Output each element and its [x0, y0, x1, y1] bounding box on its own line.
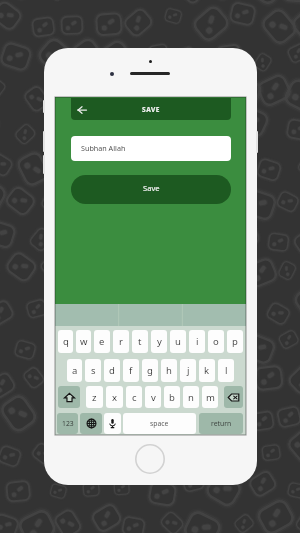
staticText: s — [91, 364, 96, 377]
staticText: l — [225, 364, 228, 377]
button[interactable]: v — [145, 386, 161, 408]
button[interactable]: a — [67, 359, 82, 382]
button[interactable]: q — [58, 330, 73, 353]
staticText: b — [169, 391, 175, 404]
staticText: 123 — [62, 419, 74, 428]
staticText: p — [232, 335, 238, 348]
staticText: k — [204, 364, 210, 377]
button[interactable]: y — [151, 330, 167, 353]
staticText: c — [132, 391, 137, 404]
staticText: Subhan Allah — [81, 143, 126, 153]
button[interactable]: w — [76, 330, 91, 353]
staticText: m — [206, 391, 215, 404]
staticText: q — [63, 335, 69, 348]
button[interactable]: c — [126, 386, 142, 408]
staticText: n — [188, 391, 194, 404]
button[interactable]: return — [199, 413, 243, 434]
button[interactable]: n — [183, 386, 199, 408]
button[interactable]: Voice input — [104, 413, 121, 434]
button[interactable]: x — [106, 386, 123, 408]
button[interactable]: u — [170, 330, 186, 353]
staticText: return — [211, 419, 232, 428]
button[interactable]: t — [132, 330, 148, 353]
staticText: space — [150, 419, 169, 428]
button[interactable]: 123 — [57, 413, 78, 434]
staticText: z — [92, 391, 97, 404]
staticText: t — [138, 335, 142, 348]
staticText: x — [112, 391, 118, 404]
button[interactable]: f — [123, 359, 139, 382]
button[interactable]: Subhan Allah — [71, 136, 231, 161]
staticText: d — [109, 364, 115, 377]
button[interactable]: l — [218, 359, 234, 382]
staticText: f — [129, 364, 133, 377]
button[interactable]: space — [123, 413, 196, 434]
button[interactable]: r — [113, 330, 129, 353]
staticText: r — [119, 335, 123, 348]
staticText: y — [157, 335, 162, 348]
staticText: Save — [143, 183, 160, 193]
button[interactable]: d — [104, 359, 120, 382]
staticText: u — [175, 335, 181, 348]
button[interactable]: m — [202, 386, 218, 408]
button[interactable]: k — [199, 359, 215, 382]
staticText: SAVE — [142, 105, 161, 114]
button[interactable]: g — [142, 359, 158, 382]
staticText: w — [80, 335, 88, 348]
button[interactable]: Delete — [224, 386, 243, 408]
button[interactable]: Back — [74, 102, 89, 117]
button[interactable]: b — [164, 386, 180, 408]
button[interactable]: Change keyboard — [80, 413, 102, 434]
button[interactable]: p — [227, 330, 243, 353]
button[interactable]: i — [189, 330, 205, 353]
staticText: e — [99, 335, 105, 348]
staticText: i — [196, 335, 199, 348]
button[interactable]: o — [208, 330, 224, 353]
button[interactable]: s — [85, 359, 101, 382]
button[interactable]: Shift — [58, 386, 80, 408]
staticText: j — [187, 364, 190, 377]
staticText: o — [213, 335, 219, 348]
button[interactable]: SAVE — [71, 98, 231, 120]
button[interactable]: j — [180, 359, 196, 382]
button[interactable]: Save — [71, 175, 231, 204]
staticText: v — [151, 391, 156, 404]
staticText: g — [147, 364, 153, 377]
button[interactable]: e — [94, 330, 110, 353]
staticText: a — [72, 364, 78, 377]
staticText: h — [166, 364, 172, 377]
button[interactable]: z — [86, 386, 103, 408]
button[interactable]: h — [161, 359, 177, 382]
